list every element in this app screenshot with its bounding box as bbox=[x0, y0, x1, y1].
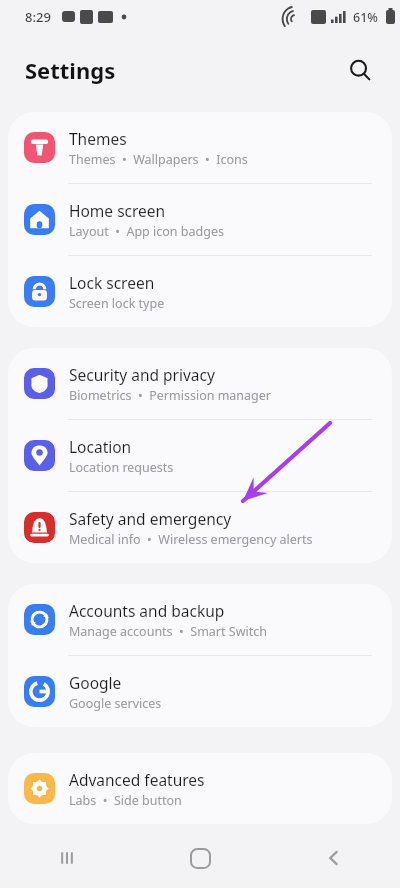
button[interactable]: Home bbox=[134, 828, 267, 888]
staticText: Medical info • Wireless emergency alerts bbox=[69, 531, 313, 548]
staticText: Home screen bbox=[69, 200, 166, 221]
button[interactable]: Advanced features bbox=[8, 753, 392, 824]
staticText: 8:29 bbox=[25, 8, 51, 26]
button[interactable]: Back bbox=[267, 828, 400, 888]
staticText: Themes • Wallpapers • Icons bbox=[69, 151, 248, 168]
staticText: Screen lock type bbox=[69, 295, 165, 312]
staticText: Settings bbox=[25, 55, 116, 85]
staticText: Biometrics • Permission manager bbox=[69, 387, 272, 404]
staticText: Themes bbox=[69, 128, 127, 149]
staticText: Google services bbox=[69, 695, 162, 712]
staticText: Layout • App icon badges bbox=[69, 223, 224, 240]
staticText: Location bbox=[69, 436, 132, 457]
staticText: Location requests bbox=[69, 459, 174, 476]
button[interactable]: Safety and emergency bbox=[8, 492, 392, 563]
button[interactable]: Location bbox=[8, 420, 392, 491]
staticText: Manage accounts • Smart Switch bbox=[69, 623, 267, 640]
button[interactable]: Lock screen bbox=[8, 256, 392, 327]
staticText: Security and privacy bbox=[69, 364, 215, 385]
button[interactable]: Security and privacy bbox=[8, 348, 392, 419]
staticText: Safety and emergency bbox=[69, 508, 232, 529]
button[interactable]: Themes bbox=[8, 112, 392, 183]
staticText: Labs • Side button bbox=[69, 792, 182, 809]
staticText: Lock screen bbox=[69, 272, 155, 293]
button[interactable]: Accounts and backup bbox=[8, 584, 392, 655]
staticText: 61% bbox=[353, 9, 378, 26]
button[interactable]: Recent apps bbox=[0, 828, 134, 888]
staticText: Google bbox=[69, 672, 122, 693]
button[interactable]: Google bbox=[8, 656, 392, 727]
staticText: Advanced features bbox=[69, 769, 205, 790]
staticText: Accounts and backup bbox=[69, 600, 225, 621]
button[interactable]: Home screen bbox=[8, 184, 392, 255]
button[interactable]: Search bbox=[338, 48, 382, 92]
